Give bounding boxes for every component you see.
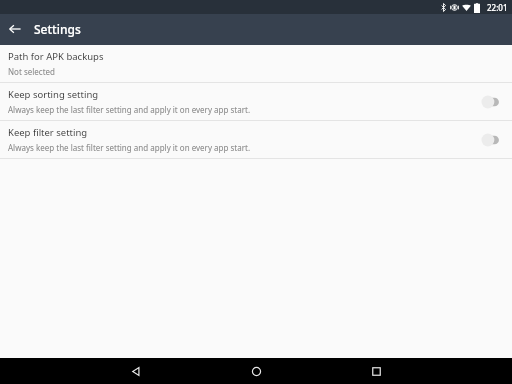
button[interactable]: Toggle setting: [478, 93, 504, 111]
button[interactable]: Home: [224, 358, 288, 384]
staticText: Always keep the last filter setting and …: [8, 142, 251, 153]
button[interactable]: Back: [0, 14, 30, 44]
staticText: Keep sorting setting: [8, 88, 99, 101]
button[interactable]: Toggle setting: [478, 131, 504, 149]
button[interactable]: Back: [104, 358, 168, 384]
staticText: Settings: [34, 21, 81, 37]
staticText: Always keep the last filter setting and …: [8, 104, 251, 115]
button[interactable]: Keep filter setting: [0, 121, 512, 158]
staticText: Keep filter setting: [8, 126, 88, 139]
button[interactable]: Keep sorting setting: [0, 83, 512, 120]
staticText: Not selected: [8, 66, 55, 77]
button[interactable]: Path for APK backups: [0, 45, 512, 82]
button[interactable]: Recent apps: [344, 358, 408, 384]
staticText: Path for APK backups: [8, 50, 104, 63]
staticText: 22:01: [487, 2, 508, 13]
